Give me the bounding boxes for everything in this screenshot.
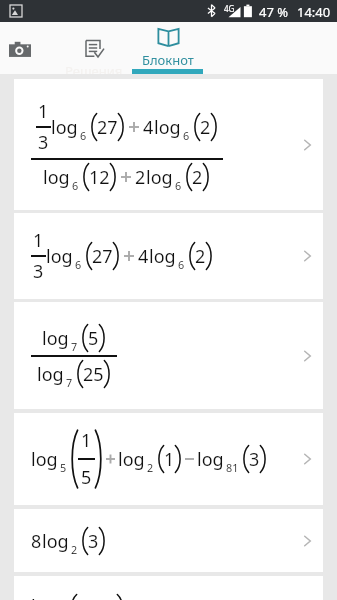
button[interactable]: 1 — [14, 213, 323, 299]
staticText: 6 — [175, 178, 182, 193]
staticText: 14:40 — [297, 3, 331, 21]
staticText: 6 — [80, 128, 87, 143]
staticText: 3 — [249, 447, 260, 472]
button[interactable]: log — [14, 302, 323, 409]
staticText: 6 — [178, 257, 185, 272]
staticText: log — [37, 362, 64, 387]
button[interactable]: log — [14, 413, 323, 505]
button[interactable]: Решения — [47, 22, 132, 74]
staticText: 7 — [71, 339, 78, 354]
staticText: log — [31, 447, 58, 472]
staticText: 27 — [92, 244, 113, 269]
staticText: Блокнот — [142, 51, 194, 69]
button[interactable]: log — [14, 576, 323, 600]
staticText: 1 — [164, 447, 175, 472]
staticText: 6 — [75, 257, 82, 272]
staticText: log — [43, 165, 70, 190]
staticText: log — [118, 447, 145, 472]
staticText: 1 — [81, 428, 92, 453]
staticText: 4 — [143, 115, 154, 140]
staticText: 6 — [72, 178, 79, 193]
button[interactable]: 8 — [14, 509, 323, 572]
staticText: 1 — [38, 99, 49, 124]
staticText: 2 — [200, 115, 211, 140]
staticText: log — [149, 244, 176, 269]
staticText: 3 — [88, 529, 99, 554]
staticText: 3 — [38, 130, 49, 155]
staticText: 7 — [66, 375, 73, 390]
staticText: 4 — [138, 244, 149, 269]
staticText: 4G — [224, 3, 235, 14]
staticText: log — [51, 115, 78, 140]
staticText: 2 — [192, 165, 203, 190]
staticText: 27 — [97, 115, 118, 140]
button[interactable]: Блокнот — [132, 22, 203, 74]
staticText: 81 — [226, 460, 239, 475]
staticText: 5 — [88, 326, 99, 351]
staticText: log — [197, 447, 224, 472]
staticText: log — [31, 594, 58, 600]
staticText: 2 — [195, 244, 206, 269]
staticText: 8 — [31, 529, 42, 554]
staticText: 2x–1 — [77, 594, 117, 600]
staticText: log — [42, 529, 69, 554]
button[interactable]: Camera — [0, 22, 47, 74]
staticText: log — [46, 244, 73, 269]
staticText: 5 — [60, 460, 67, 475]
staticText: Решения — [65, 62, 123, 74]
staticText: 6 — [183, 128, 190, 143]
staticText: log — [42, 326, 69, 351]
staticText: 2 — [135, 165, 146, 190]
staticText: 1 — [33, 228, 44, 253]
staticText: 47 % — [259, 3, 289, 21]
staticText: 2 — [147, 460, 154, 475]
staticText: 5 — [81, 465, 92, 490]
staticText: log — [154, 115, 181, 140]
staticText: 25 — [83, 362, 104, 387]
staticText: 2 — [71, 542, 78, 557]
button[interactable]: 1 — [14, 79, 323, 210]
staticText: 12 — [89, 165, 110, 190]
staticText: log — [146, 165, 173, 190]
staticText: 3 — [33, 259, 44, 284]
